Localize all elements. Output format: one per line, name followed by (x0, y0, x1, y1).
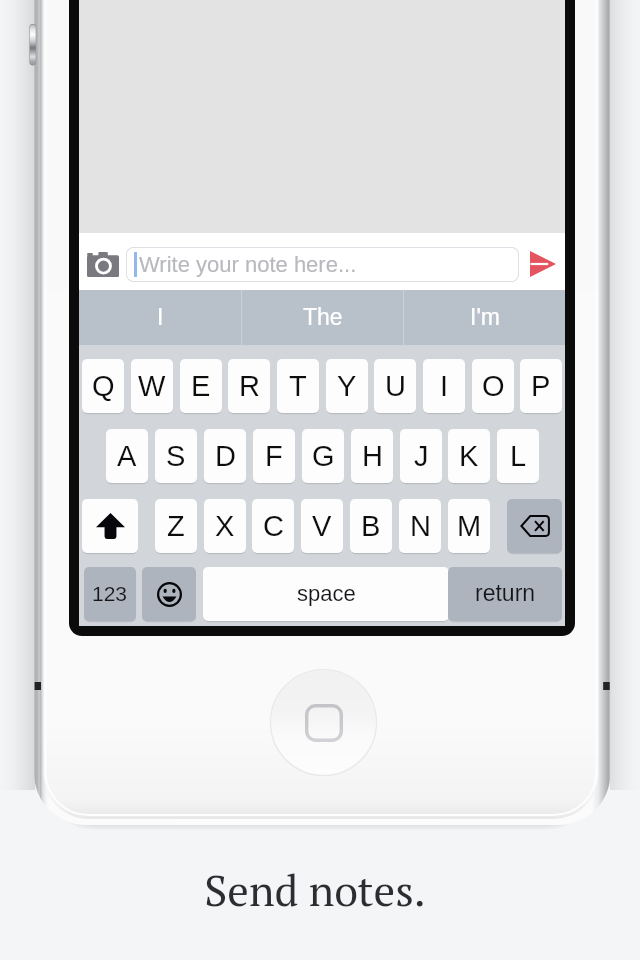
button[interactable]: Q (82, 359, 124, 413)
button[interactable]: I (79, 290, 241, 345)
staticText: Q (92, 370, 115, 402)
staticText: A (117, 440, 137, 472)
staticText: return (475, 580, 536, 606)
button[interactable]: P (520, 359, 562, 413)
button[interactable]: Home (270, 669, 377, 776)
button[interactable]: O (472, 359, 514, 413)
button[interactable]: U (374, 359, 416, 413)
button[interactable]: Backspace (507, 499, 562, 553)
button[interactable]: Camera (79, 238, 126, 290)
staticText: N (410, 510, 431, 542)
staticText: X (215, 510, 235, 542)
staticText: Y (337, 370, 357, 402)
staticText: W (138, 370, 166, 402)
staticText: K (459, 440, 479, 472)
button[interactable]: V (301, 499, 343, 553)
button[interactable]: X (204, 499, 246, 553)
button[interactable]: G (302, 429, 344, 483)
button[interactable]: D (204, 429, 246, 483)
button[interactable]: E (180, 359, 222, 413)
button[interactable]: C (252, 499, 294, 553)
button[interactable]: A (106, 429, 148, 483)
other: Backspace (517, 513, 553, 539)
staticText: I'm (470, 304, 500, 330)
staticText: S (166, 440, 186, 472)
button[interactable]: I'm (404, 290, 565, 345)
staticText: R (239, 370, 260, 402)
staticText: G (312, 440, 335, 472)
other: Emoji (153, 578, 185, 610)
staticText: V (312, 510, 332, 542)
button[interactable]: 123 (84, 567, 136, 621)
staticText: H (362, 440, 383, 472)
staticText: D (215, 440, 236, 472)
button[interactable]: return (448, 567, 562, 621)
staticText: 123 (92, 582, 128, 605)
staticText: Z (167, 510, 185, 542)
button[interactable]: Emoji (142, 567, 196, 621)
staticText: U (385, 370, 406, 402)
staticText: P (531, 370, 551, 402)
button[interactable]: K (448, 429, 490, 483)
button[interactable]: T (277, 359, 319, 413)
button[interactable]: W (131, 359, 173, 413)
button[interactable]: space (203, 567, 449, 621)
button[interactable]: I (423, 359, 465, 413)
button[interactable]: Y (326, 359, 368, 413)
staticText: I (157, 304, 164, 330)
button[interactable]: M (448, 499, 490, 553)
staticText: E (191, 370, 211, 402)
button[interactable]: The (242, 290, 403, 345)
staticText: Write your note here... (139, 252, 357, 277)
other: Shift (95, 512, 125, 540)
button[interactable]: H (351, 429, 393, 483)
staticText: The (303, 304, 343, 330)
staticText: O (482, 370, 505, 402)
staticText: L (510, 440, 527, 472)
staticText: C (263, 510, 284, 542)
button[interactable]: Write your note here... (126, 247, 519, 282)
button[interactable]: Send (520, 238, 565, 290)
button[interactable]: N (399, 499, 441, 553)
button[interactable]: F (253, 429, 295, 483)
staticText: I (440, 370, 449, 402)
staticText: M (457, 510, 482, 542)
button[interactable]: L (497, 429, 539, 483)
button[interactable]: S (155, 429, 197, 483)
button[interactable]: Shift (82, 499, 138, 553)
button[interactable]: Z (155, 499, 197, 553)
staticText: Send notes. (204, 861, 426, 918)
staticText: B (361, 510, 381, 542)
button[interactable]: R (228, 359, 270, 413)
button[interactable]: J (400, 429, 442, 483)
staticText: F (265, 440, 283, 472)
staticText: space (297, 581, 356, 606)
staticText: T (289, 370, 307, 402)
button[interactable]: B (350, 499, 392, 553)
staticText: J (414, 440, 429, 472)
